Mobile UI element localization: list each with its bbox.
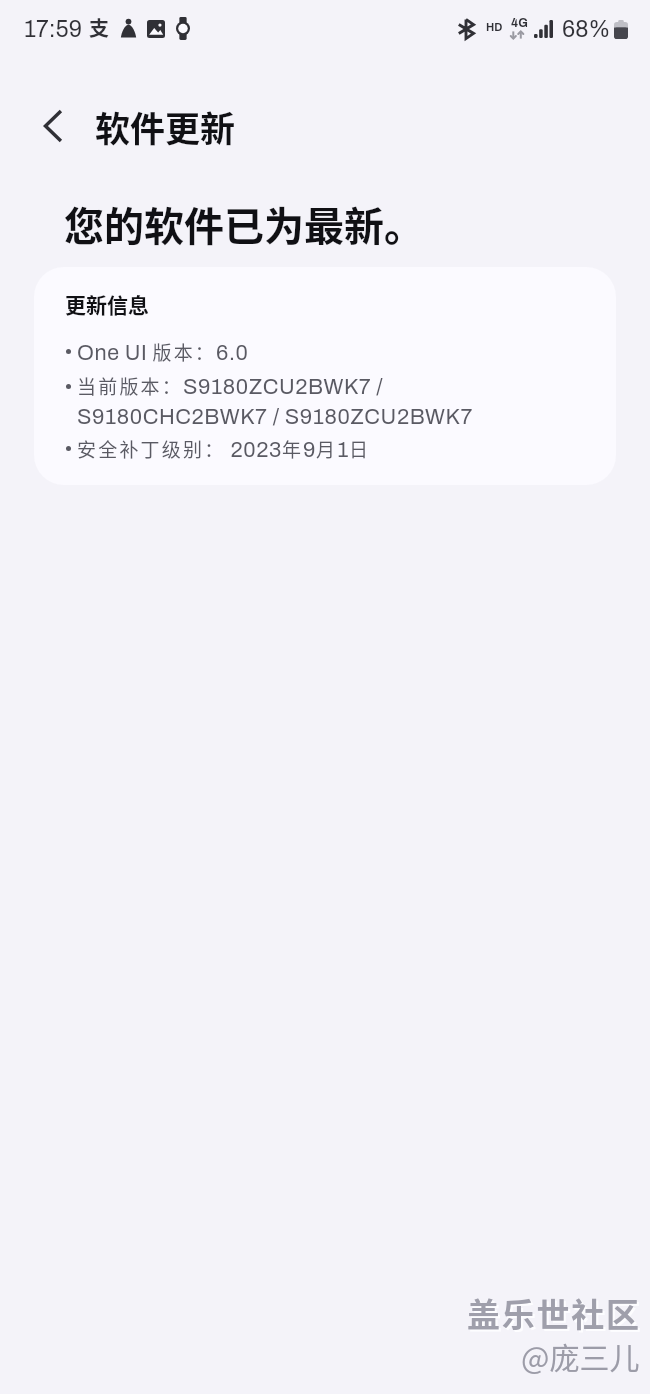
staticText: HD	[486, 21, 503, 33]
staticText: 软件更新	[95, 101, 236, 152]
staticText: 盖乐世社区	[468, 1291, 642, 1339]
staticText: 17:59	[24, 17, 82, 42]
staticText: 4G	[511, 16, 528, 29]
staticText: 更新信息	[65, 289, 149, 319]
button[interactable]: Back	[30, 103, 76, 149]
staticText: 您的软件已为最新。	[64, 195, 424, 253]
staticText: 盖乐世社区	[466, 1289, 640, 1337]
staticText: 支	[89, 13, 109, 42]
staticText: 安全补丁级别： 2023年9月1日	[77, 435, 371, 463]
staticText: S9180CHC2BWK7 / S9180ZCU2BWK7	[77, 405, 473, 428]
staticText: 当前版本：S9180ZCU2BWK7 /	[77, 372, 384, 400]
staticText: @庞三儿	[521, 1334, 640, 1377]
staticText: 68%	[562, 17, 611, 42]
staticText: One UI 版本：6.0	[77, 338, 249, 366]
